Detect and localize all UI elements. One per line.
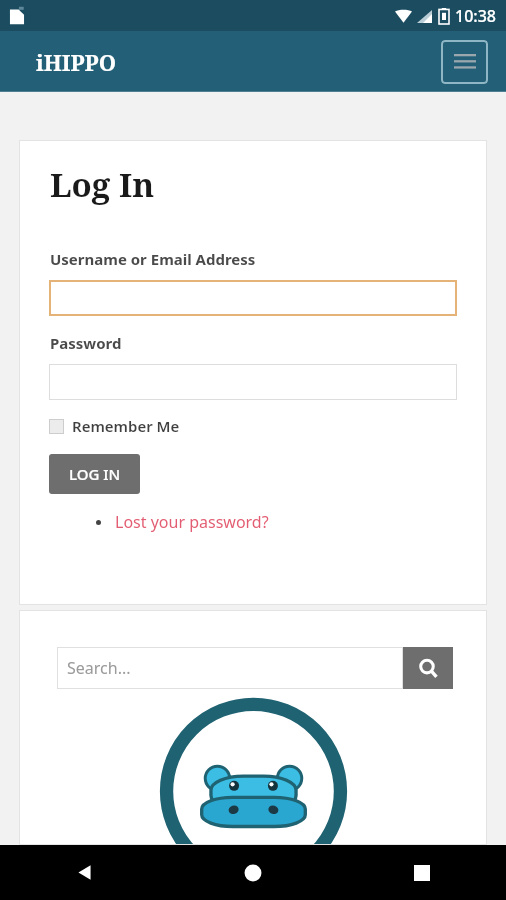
button[interactable]: Lost your password? xyxy=(96,511,269,533)
staticText: Log In xyxy=(50,162,155,207)
button[interactable]: Open menu xyxy=(441,40,488,84)
button[interactable]: Search xyxy=(403,647,453,689)
button[interactable]: Search... xyxy=(57,647,403,689)
button[interactable]: Remember Me xyxy=(49,416,180,436)
staticText: Password xyxy=(50,333,122,353)
staticText: iHIPPO xyxy=(36,47,116,77)
staticText: Remember Me xyxy=(72,416,180,436)
staticText: Lost your password? xyxy=(115,511,269,533)
button[interactable]: Recent apps xyxy=(337,845,506,900)
button[interactable]: Home xyxy=(168,845,337,900)
button[interactable]: LOG IN xyxy=(49,454,140,494)
button[interactable] xyxy=(49,280,457,316)
staticText: Search... xyxy=(67,657,131,679)
staticText: LOG IN xyxy=(69,464,121,484)
button[interactable] xyxy=(49,364,457,400)
staticText: Username or Email Address xyxy=(50,249,256,269)
button[interactable]: Back xyxy=(0,845,168,900)
staticText: 10:38 xyxy=(455,5,496,27)
